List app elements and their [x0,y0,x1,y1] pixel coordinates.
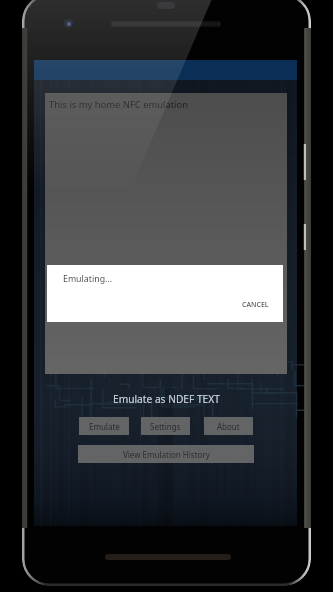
staticText: About [217,421,240,432]
staticText: Emulate [89,421,120,432]
staticText: Emulate as NDEF TEXT [113,392,220,406]
button[interactable]: This is my home NFC emulation [45,93,287,374]
button[interactable]: Emulate [79,417,129,435]
button[interactable]: Settings [141,417,190,435]
button[interactable]: Emulate as NDEF TEXT [107,392,225,406]
staticText: View Emulation History [123,449,210,460]
staticText: Settings [150,421,181,432]
staticText: CANCEL [242,300,269,310]
button[interactable]: About [204,417,253,435]
button[interactable]: View Emulation History [78,445,254,463]
button[interactable]: CANCEL [242,300,269,310]
staticText: This is my home NFC emulation [49,98,189,111]
staticText: Emulating... [63,273,113,285]
